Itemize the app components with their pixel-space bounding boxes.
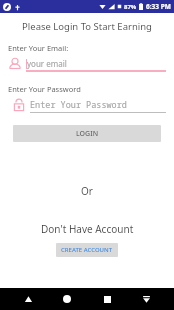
staticText: 6:33 PM [146,2,171,11]
staticText: your email [27,58,67,69]
button[interactable]: LOGIN [13,125,161,142]
staticText: CREATE ACCOUNT [61,246,113,254]
staticText: LOGIN [76,129,99,139]
button[interactable]: Back [17,288,39,310]
staticText: Please Login To Start Earning [22,20,152,33]
staticText: Enter Your Password [30,99,127,111]
button[interactable]: Enter Your Password [12,97,166,113]
staticText: Don't Have Account [41,222,134,236]
button[interactable]: CREATE ACCOUNT [56,243,118,257]
button[interactable]: Recent apps [96,288,118,310]
staticText: Or [81,184,93,198]
staticText: 87% [124,3,137,11]
staticText: Enter Your Password [8,84,81,94]
button[interactable]: Home [56,288,78,310]
staticText: Enter Your Email: [8,43,69,53]
button[interactable]: Hide keyboard [135,288,157,310]
button[interactable]: your email [7,56,166,72]
